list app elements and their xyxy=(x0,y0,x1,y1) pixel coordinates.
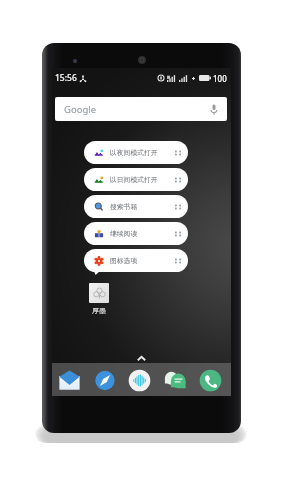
staticText: 继续阅读 xyxy=(110,229,138,238)
staticText: 厚墨 xyxy=(92,306,106,315)
button[interactable]: 以日间模式打开 xyxy=(84,168,188,191)
staticText: 搜索书籍 xyxy=(110,202,138,211)
button[interactable]: 图标选项 xyxy=(84,249,188,272)
staticText: 以夜间模式打开 xyxy=(110,148,158,157)
staticText: 100 xyxy=(213,73,227,84)
button[interactable]: Phone xyxy=(197,367,223,393)
staticText: 图标选项 xyxy=(110,256,138,265)
button[interactable]: Google xyxy=(55,97,227,121)
staticText: 以日间模式打开 xyxy=(110,175,158,184)
button[interactable]: Browser xyxy=(91,367,117,393)
staticText: Google xyxy=(64,103,97,116)
button[interactable]: Messages xyxy=(162,367,188,393)
staticText: 15:56 xyxy=(55,72,77,84)
button[interactable]: Sound Recorder xyxy=(126,367,152,393)
button[interactable]: 以夜间模式打开 xyxy=(84,141,188,164)
button[interactable]: 厚墨 xyxy=(83,283,115,315)
button[interactable]: 继续阅读 xyxy=(84,222,188,245)
button[interactable]: Email xyxy=(56,367,82,393)
button[interactable]: 搜索书籍 xyxy=(84,195,188,218)
